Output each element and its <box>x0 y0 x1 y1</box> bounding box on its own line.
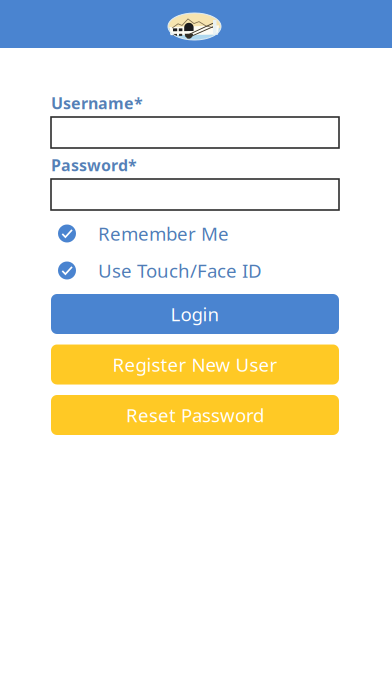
staticText: Register New User <box>112 352 277 377</box>
staticText: Reset Password <box>126 403 264 427</box>
staticText: Username* <box>51 92 143 114</box>
staticText: Remember Me <box>98 221 229 246</box>
button[interactable]: Username <box>51 117 339 148</box>
button[interactable]: Use Touch/Face ID <box>51 257 339 283</box>
button[interactable]: Reset Password <box>51 395 339 435</box>
button[interactable]: Login <box>51 294 339 334</box>
button[interactable]: Password <box>51 179 339 210</box>
staticText: Use Touch/Face ID <box>98 258 262 283</box>
staticText: Password* <box>51 154 137 176</box>
staticText: Login <box>170 302 219 326</box>
button[interactable]: Register New User <box>51 344 339 384</box>
button[interactable]: Remember Me <box>51 220 339 246</box>
